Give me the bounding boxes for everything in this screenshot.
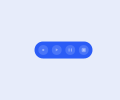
button[interactable]: Record — [36, 41, 50, 58]
button[interactable]: Pause — [63, 41, 77, 58]
button[interactable]: Stop — [77, 41, 90, 58]
button[interactable]: Play — [50, 41, 63, 58]
